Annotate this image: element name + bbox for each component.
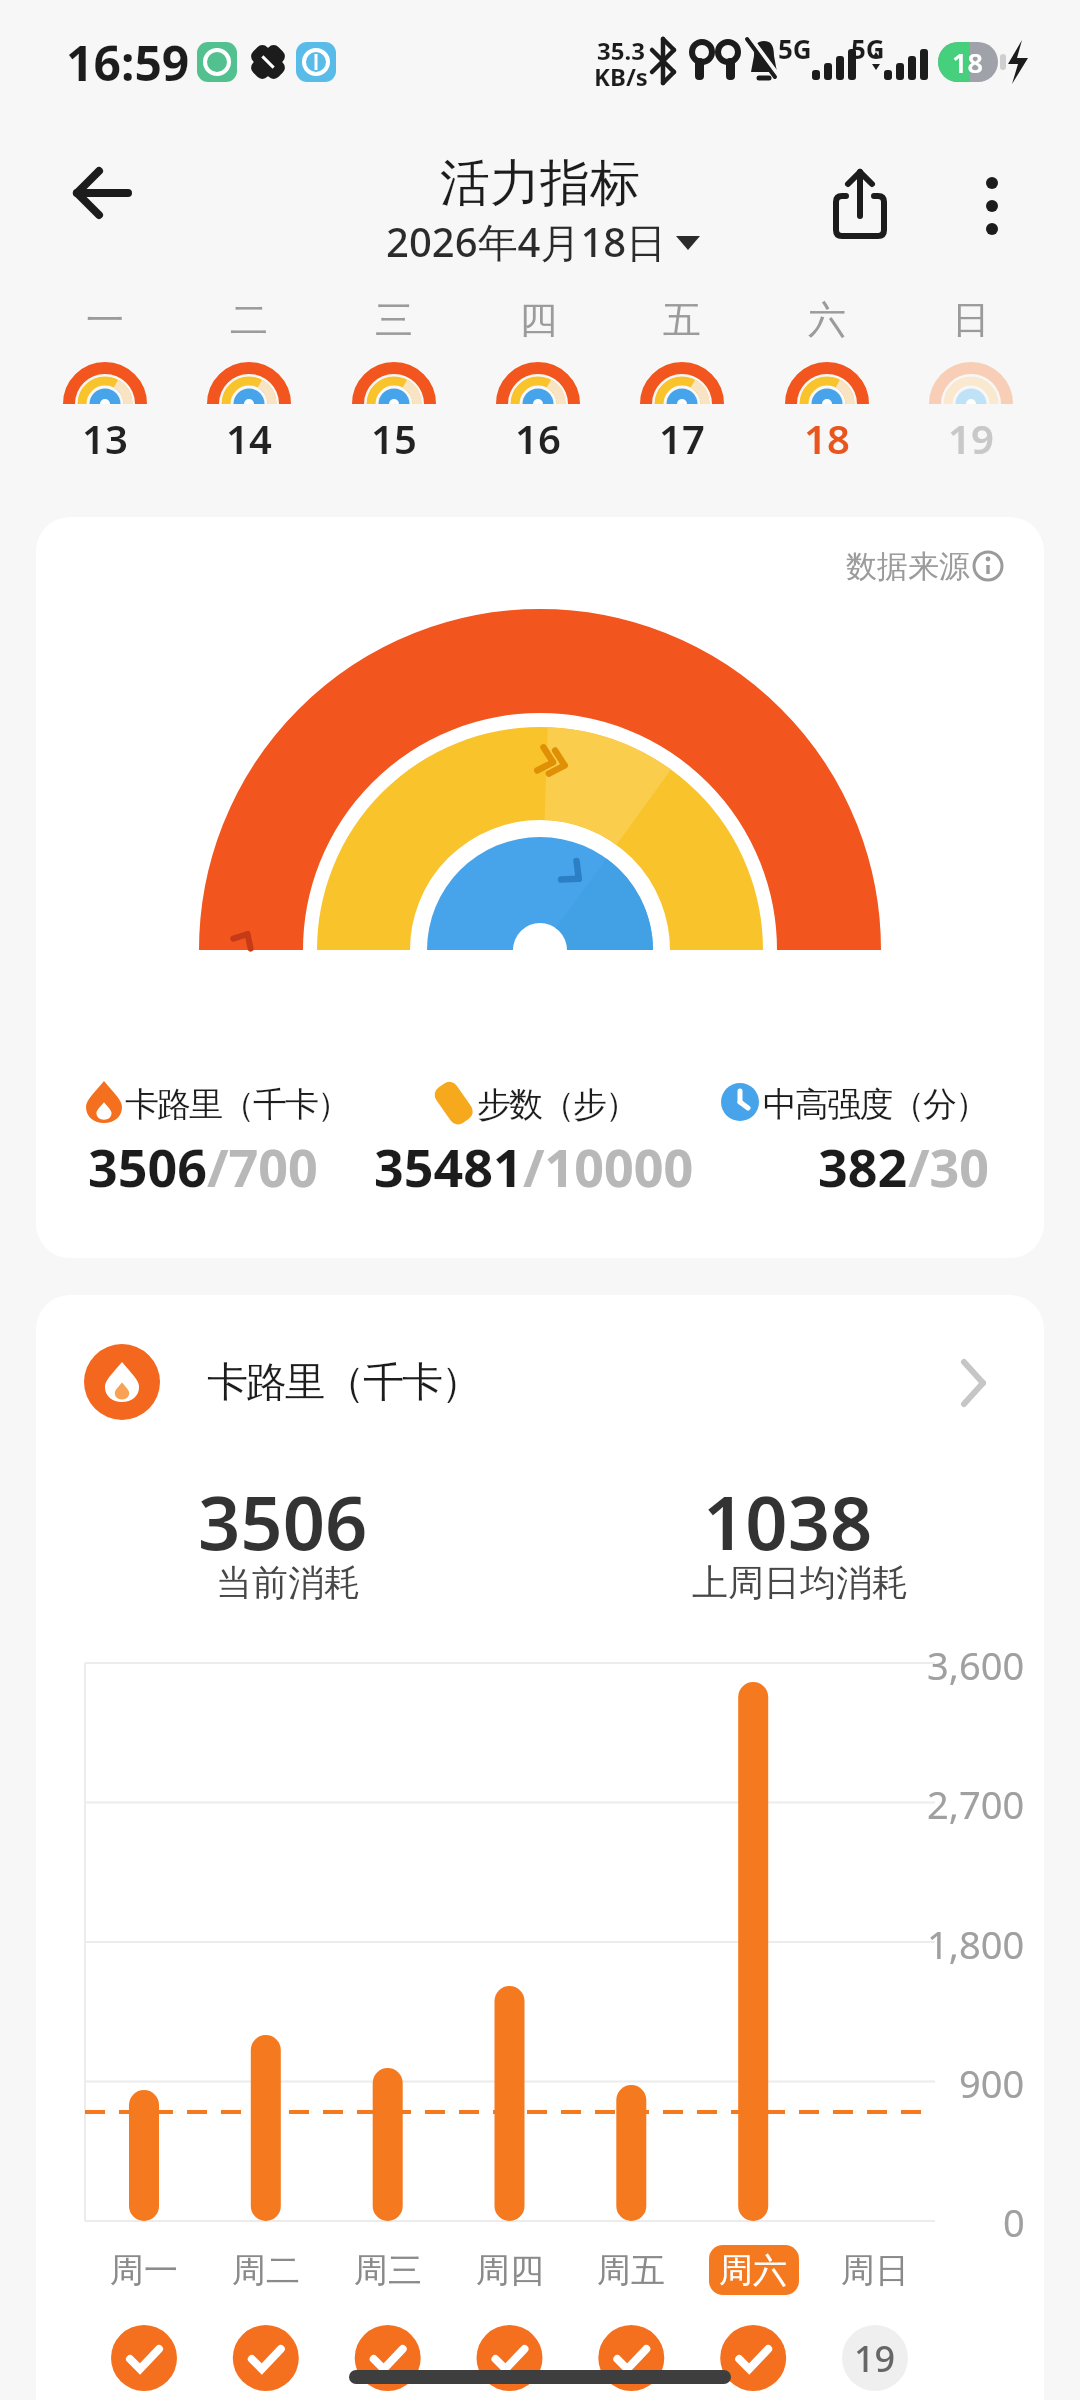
staticText: 382 bbox=[818, 1131, 908, 1202]
button[interactable]: 周四 bbox=[455, 2244, 565, 2296]
staticText: 3506 bbox=[198, 1471, 368, 1561]
staticText: 中高强度（分） bbox=[764, 1083, 988, 1126]
button[interactable]: 周日 bbox=[820, 2244, 930, 2296]
staticText: 五 bbox=[663, 296, 701, 344]
button[interactable]: 周五 bbox=[576, 2244, 686, 2296]
button[interactable]: 周一 bbox=[89, 2244, 199, 2296]
staticText: 活力指标 bbox=[440, 152, 640, 215]
staticText: 3506 bbox=[88, 1131, 207, 1202]
staticText: 三 bbox=[375, 296, 413, 344]
staticText: 步数（步） bbox=[478, 1083, 638, 1126]
staticText: 900 bbox=[959, 2057, 1025, 2105]
staticText: /700 bbox=[207, 1131, 318, 1202]
staticText: 六 bbox=[808, 296, 846, 344]
button[interactable]: 周二 bbox=[211, 2244, 321, 2296]
staticText: 15 bbox=[371, 411, 417, 463]
button[interactable] bbox=[45, 295, 165, 465]
staticText: 16 bbox=[515, 411, 561, 463]
staticText: 5G bbox=[851, 31, 885, 61]
staticText: 周五 bbox=[597, 2249, 665, 2292]
button[interactable] bbox=[911, 295, 1031, 465]
staticText: KB/s bbox=[594, 60, 648, 88]
staticText: 2,700 bbox=[927, 1778, 1025, 1826]
button[interactable] bbox=[767, 295, 887, 465]
staticText: 19 bbox=[854, 2334, 896, 2383]
button[interactable]: 2026年4月18日 bbox=[326, 214, 726, 266]
staticText: 日 bbox=[952, 296, 990, 344]
staticText: 周三 bbox=[354, 2249, 422, 2292]
button[interactable] bbox=[60, 160, 150, 230]
staticText: 二 bbox=[230, 296, 268, 344]
staticText: 5G bbox=[778, 31, 812, 61]
button[interactable] bbox=[189, 295, 309, 465]
staticText: 18 bbox=[804, 411, 850, 463]
button[interactable] bbox=[955, 165, 1030, 245]
staticText: 卡路里（千卡） bbox=[208, 1357, 481, 1409]
staticText: 周日 bbox=[841, 2249, 909, 2292]
button[interactable] bbox=[478, 295, 598, 465]
staticText: /10000 bbox=[523, 1131, 694, 1202]
staticText: /30 bbox=[908, 1131, 990, 1202]
staticText: 3,600 bbox=[927, 1639, 1025, 1687]
staticText: 14 bbox=[226, 411, 272, 463]
staticText: 卡路里（千卡） bbox=[126, 1083, 350, 1126]
staticText: 周一 bbox=[110, 2249, 178, 2292]
staticText: 1,800 bbox=[927, 1918, 1025, 1966]
staticText: 数据来源 bbox=[846, 547, 970, 586]
staticText: 0 bbox=[1003, 2196, 1025, 2244]
staticText: 2026年4月18日 bbox=[386, 214, 667, 266]
button[interactable]: 周六 bbox=[698, 2244, 808, 2296]
button[interactable] bbox=[60, 1330, 1020, 1435]
staticText: 35481 bbox=[374, 1131, 523, 1202]
staticText: 17 bbox=[659, 411, 705, 463]
button[interactable]: 数据来源 bbox=[823, 544, 993, 588]
button[interactable] bbox=[820, 165, 900, 245]
staticText: 四 bbox=[519, 296, 557, 344]
staticText: 上周日均消耗 bbox=[692, 1560, 908, 1605]
staticText: 1038 bbox=[703, 1471, 873, 1561]
button[interactable] bbox=[622, 295, 742, 465]
staticText: 18 bbox=[952, 44, 983, 80]
staticText: 一 bbox=[86, 296, 124, 344]
staticText: 周四 bbox=[476, 2249, 544, 2292]
staticText: 周六 bbox=[719, 2249, 787, 2292]
staticText: 13 bbox=[82, 411, 128, 463]
button[interactable] bbox=[334, 295, 454, 465]
staticText: 35.3 bbox=[597, 34, 645, 62]
staticText: 19 bbox=[948, 411, 994, 463]
staticText: 16:59 bbox=[66, 30, 190, 90]
staticText: 当前消耗 bbox=[216, 1560, 360, 1605]
staticText: 周二 bbox=[232, 2249, 300, 2292]
button[interactable]: 周三 bbox=[333, 2244, 443, 2296]
